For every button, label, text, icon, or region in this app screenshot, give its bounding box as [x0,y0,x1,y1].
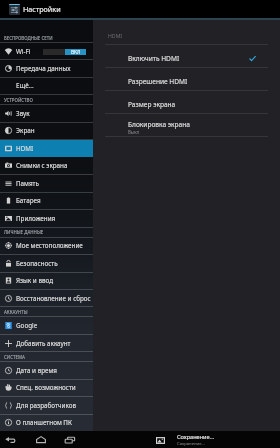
other: Saving [156,436,165,445]
button[interactable]: Батарея [0,192,93,209]
button[interactable]: HDMI [0,140,93,157]
button[interactable]: Приложения [0,210,93,227]
button[interactable]: Включить HDMI [93,44,280,67]
button[interactable]: Google [0,317,93,334]
staticText: Для разработчиков [16,401,76,410]
staticText: Дата и время [16,366,57,375]
staticText: БЕСПРОВОДНЫЕ СЕТИ [4,35,53,41]
staticText: Снимки с экрана [16,161,68,170]
button[interactable]: Восстановление и сброс [0,290,93,307]
staticText: Сохранение... [177,433,215,441]
staticText: Спец. возможности [16,383,76,392]
staticText: Экран [16,126,35,135]
button[interactable]: Размер экрана [93,90,280,113]
button[interactable]: Безопасность [0,255,93,272]
staticText: Приложения [16,214,56,223]
button[interactable]: Звук [0,105,93,122]
staticText: Блокировка экрана [128,120,190,129]
staticText: HDMI [108,32,123,39]
staticText: УСТРОЙСТВО [4,97,33,103]
button[interactable]: Home [34,431,48,448]
button[interactable]: Мое местоположение [0,237,93,254]
staticText: Память [16,179,39,188]
staticText: Батарея [16,196,41,205]
button[interactable]: Wi-Fi [0,43,93,60]
staticText: Передача данных [16,64,71,73]
staticText: Google [16,321,38,330]
staticText: Ещё... [16,81,34,90]
staticText: АККАУНТЫ [4,309,28,315]
staticText: Выкл [128,129,140,135]
staticText: Восстановление и сброс [16,294,91,303]
staticText: ЛИЧНЫЕ ДАННЫЕ [4,229,44,235]
button[interactable]: Экран [0,122,93,139]
button[interactable]: Спец. возможности [0,379,93,396]
button[interactable]: Снимки с экрана [0,157,93,174]
button[interactable]: Дата и время [0,362,93,379]
button[interactable]: Recent apps [63,431,77,448]
staticText: Wi-Fi [16,47,31,56]
button[interactable]: Для разработчиков [0,397,93,414]
button[interactable]: Блокировка экрана [93,113,280,136]
button[interactable]: Ещё... [0,77,93,94]
staticText: Разрешение HDMI [128,77,188,86]
staticText: Язык и ввод [16,276,54,285]
button[interactable]: Settings [9,4,20,15]
button[interactable]: О планшетном ПК [0,414,93,431]
staticText: Сохранение... [177,441,205,447]
button[interactable]: Разрешение HDMI [93,67,280,90]
button[interactable]: Передача данных [0,60,93,77]
staticText: СИСТЕМА [4,354,25,360]
button[interactable]: Добавить аккаунт [0,335,93,352]
button[interactable]: Saving [156,433,215,447]
staticText: О планшетном ПК [16,418,72,427]
staticText: Включить HDMI [128,54,180,63]
staticText: Безопасность [16,259,58,268]
button[interactable]: Память [0,175,93,192]
staticText: Размер экрана [128,100,176,109]
staticText: HDMI [16,144,34,153]
staticText: ВКЛ [71,49,81,55]
staticText: Мое местоположение [16,241,83,250]
button[interactable]: Язык и ввод [0,272,93,289]
staticText: Настройки [23,4,61,14]
staticText: Звук [16,109,30,118]
staticText: Добавить аккаунт [16,339,71,348]
button[interactable]: Back [3,431,17,448]
